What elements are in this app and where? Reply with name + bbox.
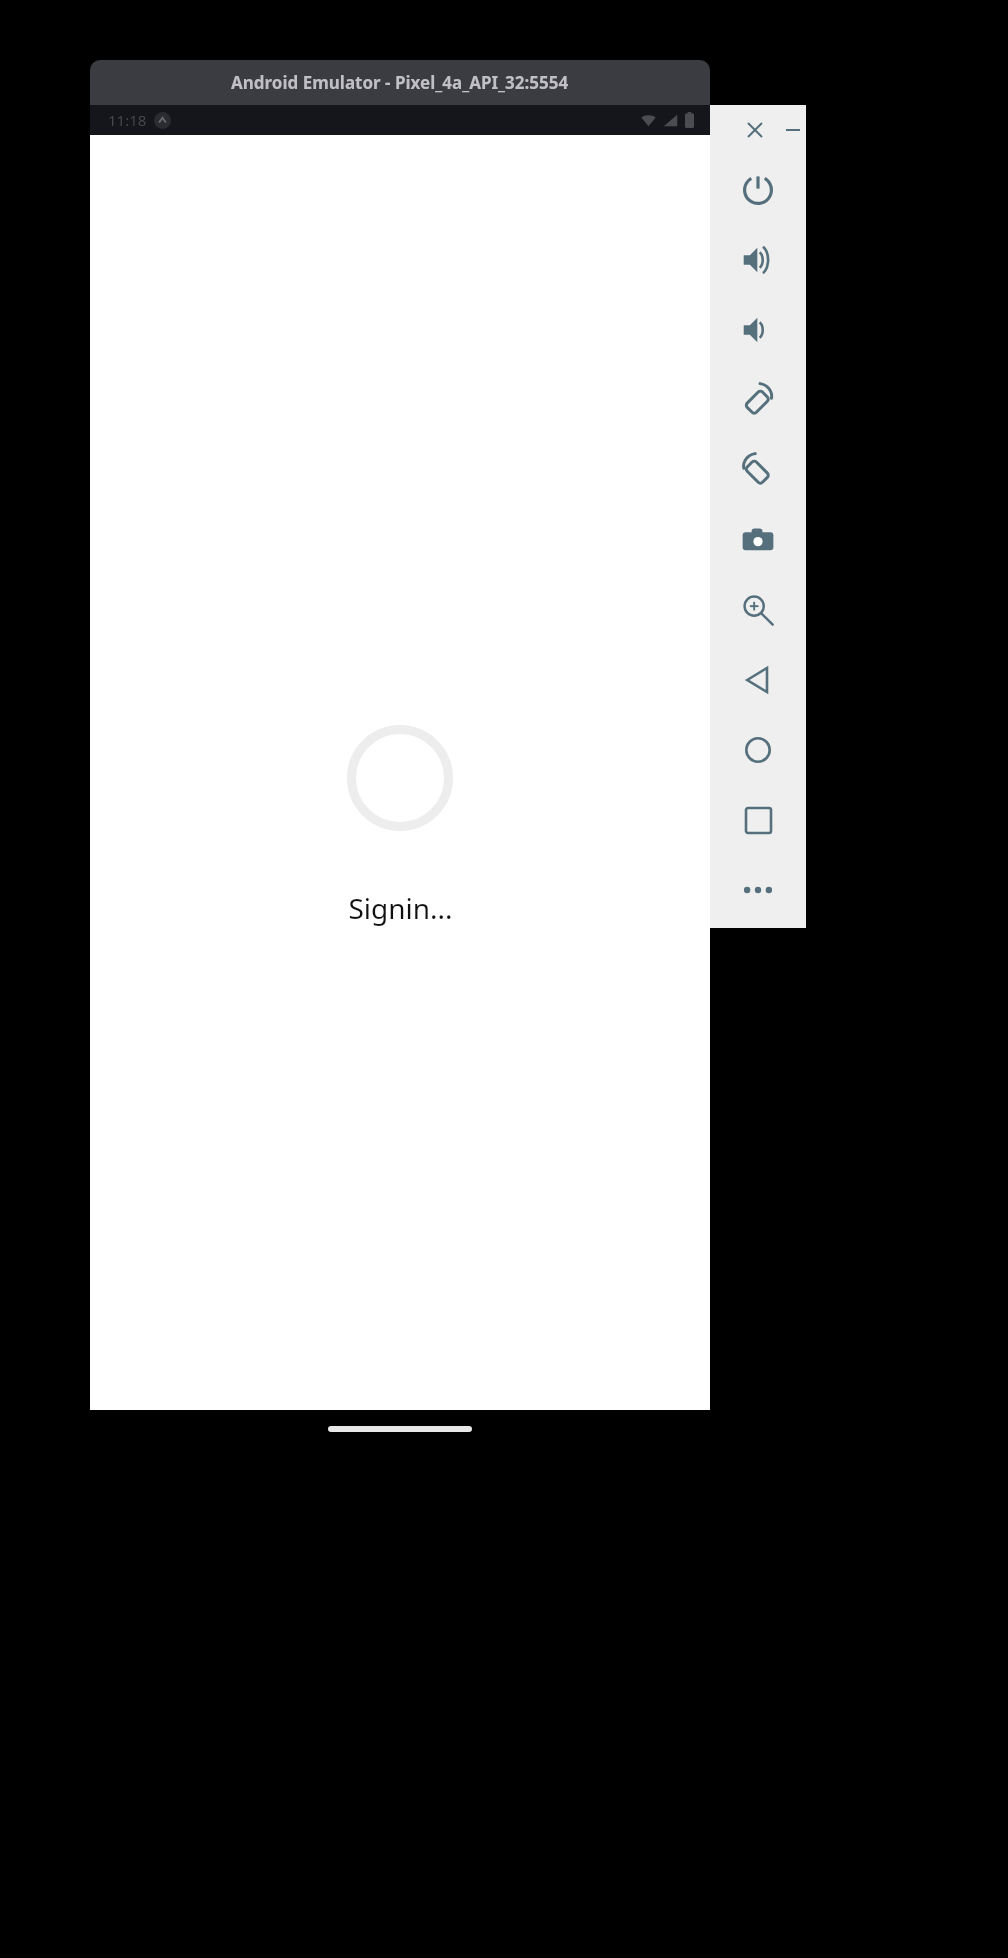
button[interactable]: Rotate right: [710, 435, 806, 505]
button[interactable]: Close: [744, 119, 766, 141]
staticText: Android Emulator - Pixel_4a_API_32:5554: [231, 71, 569, 94]
button[interactable]: Volume up: [710, 225, 806, 295]
button[interactable]: Rotate left: [710, 365, 806, 435]
button[interactable]: More: [710, 855, 806, 925]
button[interactable]: Home: [710, 715, 806, 785]
staticText: 11:18: [108, 110, 147, 130]
button[interactable]: Back: [710, 645, 806, 715]
button[interactable]: Overview: [710, 785, 806, 855]
staticText: Signin...: [348, 889, 453, 927]
button[interactable]: Take screenshot: [710, 505, 806, 575]
button[interactable]: Volume down: [710, 295, 806, 365]
button[interactable]: Power: [710, 155, 806, 225]
button[interactable]: Zoom: [710, 575, 806, 645]
button[interactable]: Minimize: [782, 119, 804, 141]
